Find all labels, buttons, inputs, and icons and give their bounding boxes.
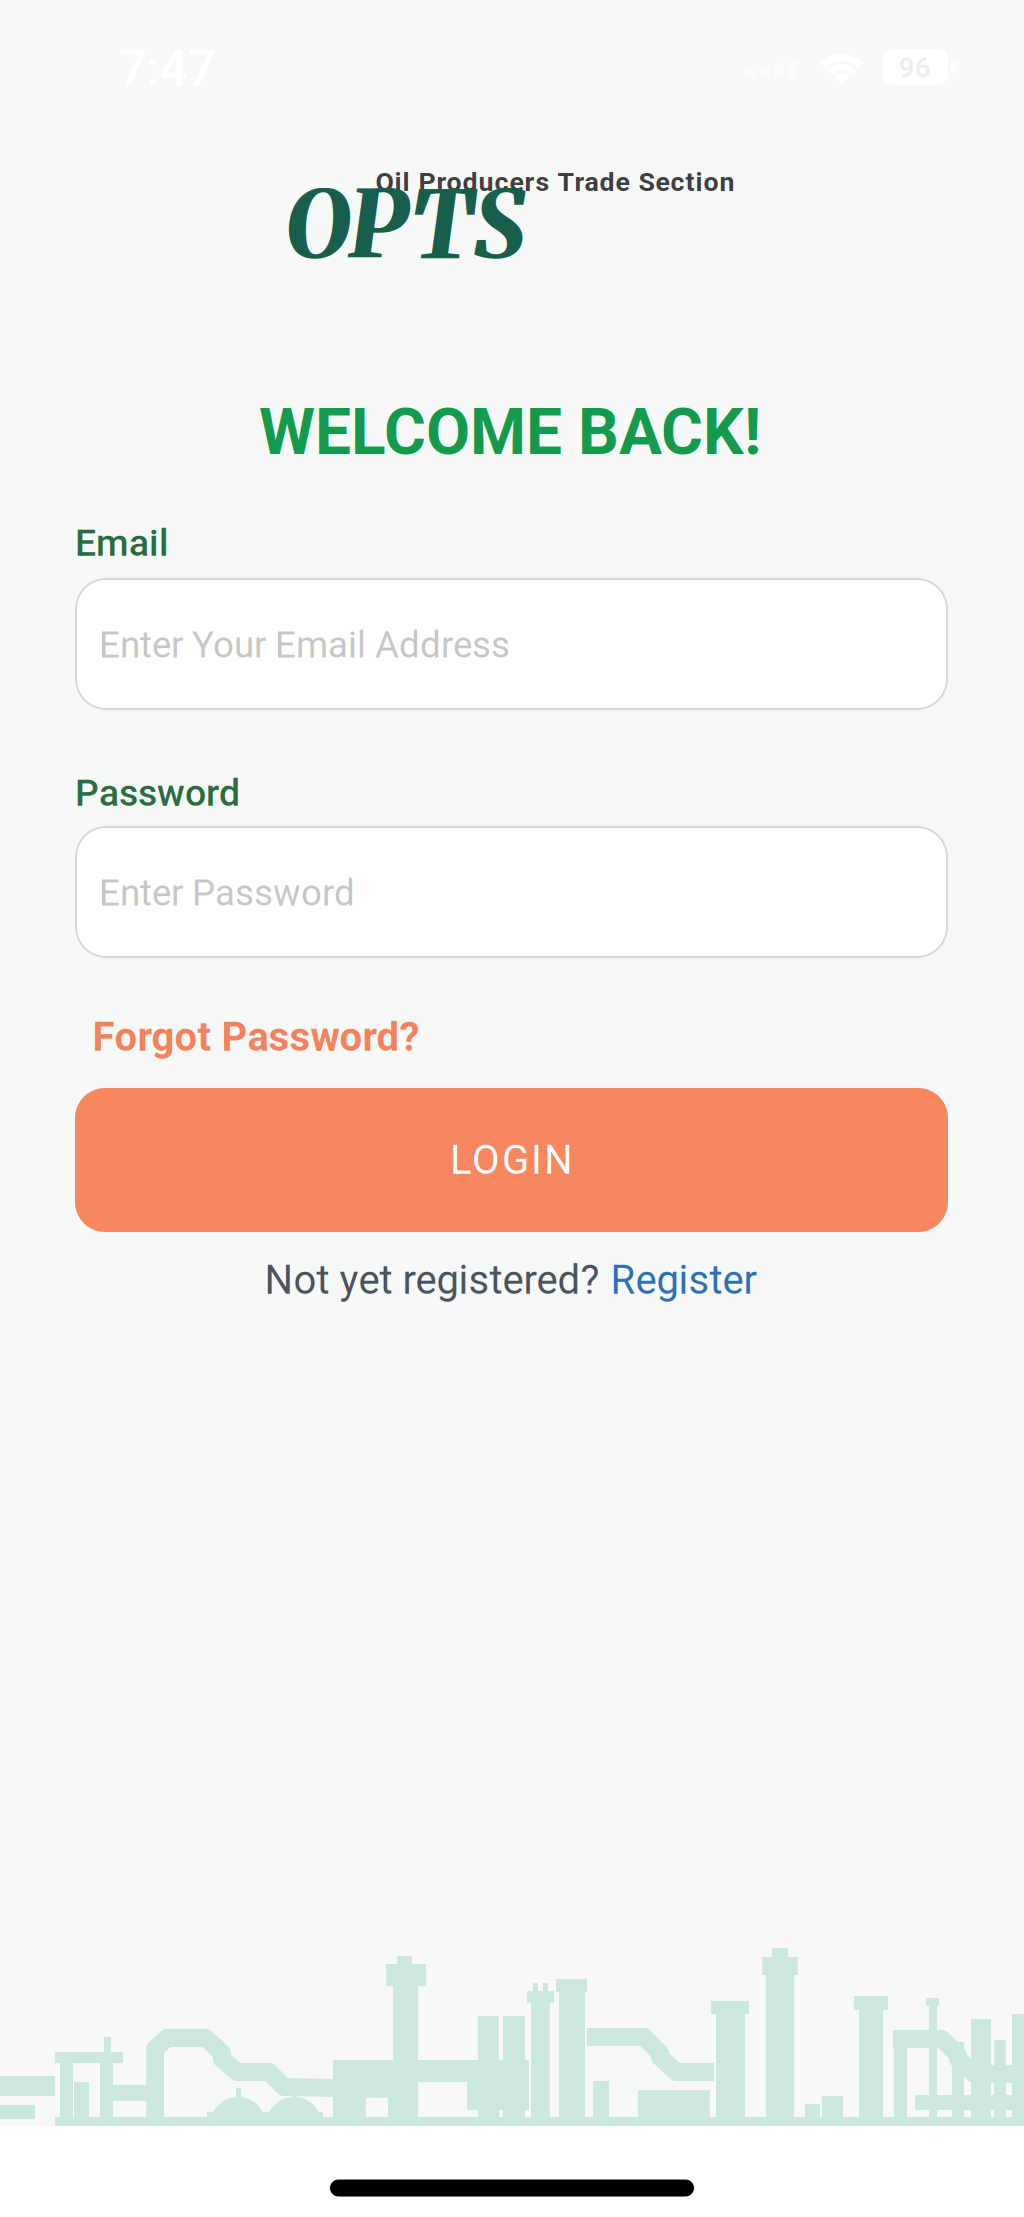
staticText: LOGIN (450, 1137, 573, 1183)
staticText: Register (610, 1257, 757, 1303)
button[interactable]: Register (610, 1257, 757, 1303)
staticText: Email (75, 521, 169, 565)
staticText: Oil Producers Trade Section (375, 166, 734, 198)
staticText: Not yet registered? (264, 1257, 599, 1303)
staticText: OPTS (285, 167, 525, 283)
staticText: Forgot Password? (92, 1014, 419, 1060)
staticText: Enter Your Email Address (99, 623, 510, 666)
staticText: Enter Password (99, 871, 355, 914)
button[interactable]: Forgot Password? (92, 1014, 419, 1060)
staticText: Password (75, 771, 240, 815)
staticText: WELCOME BACK! (259, 394, 761, 469)
staticText: 96 (898, 52, 930, 84)
button[interactable]: LOGIN (75, 1088, 948, 1232)
